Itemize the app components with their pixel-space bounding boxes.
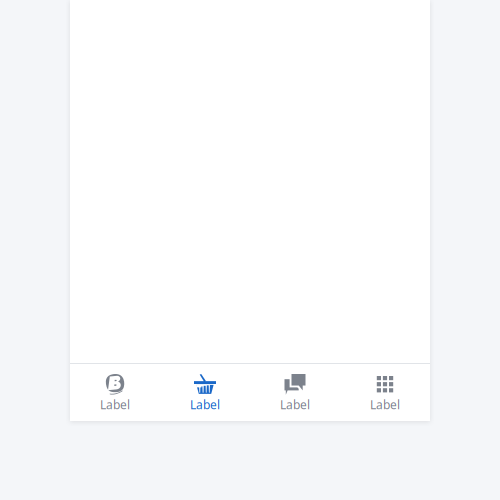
button[interactable]: Messages bbox=[250, 364, 340, 421]
button[interactable]: Home bbox=[70, 364, 160, 421]
staticText: Label bbox=[280, 396, 310, 412]
staticText: Label bbox=[100, 396, 130, 412]
staticText: Label bbox=[370, 396, 400, 412]
staticText: Label bbox=[190, 396, 220, 412]
button[interactable]: Basket bbox=[160, 364, 250, 421]
button[interactable]: More bbox=[340, 364, 430, 421]
